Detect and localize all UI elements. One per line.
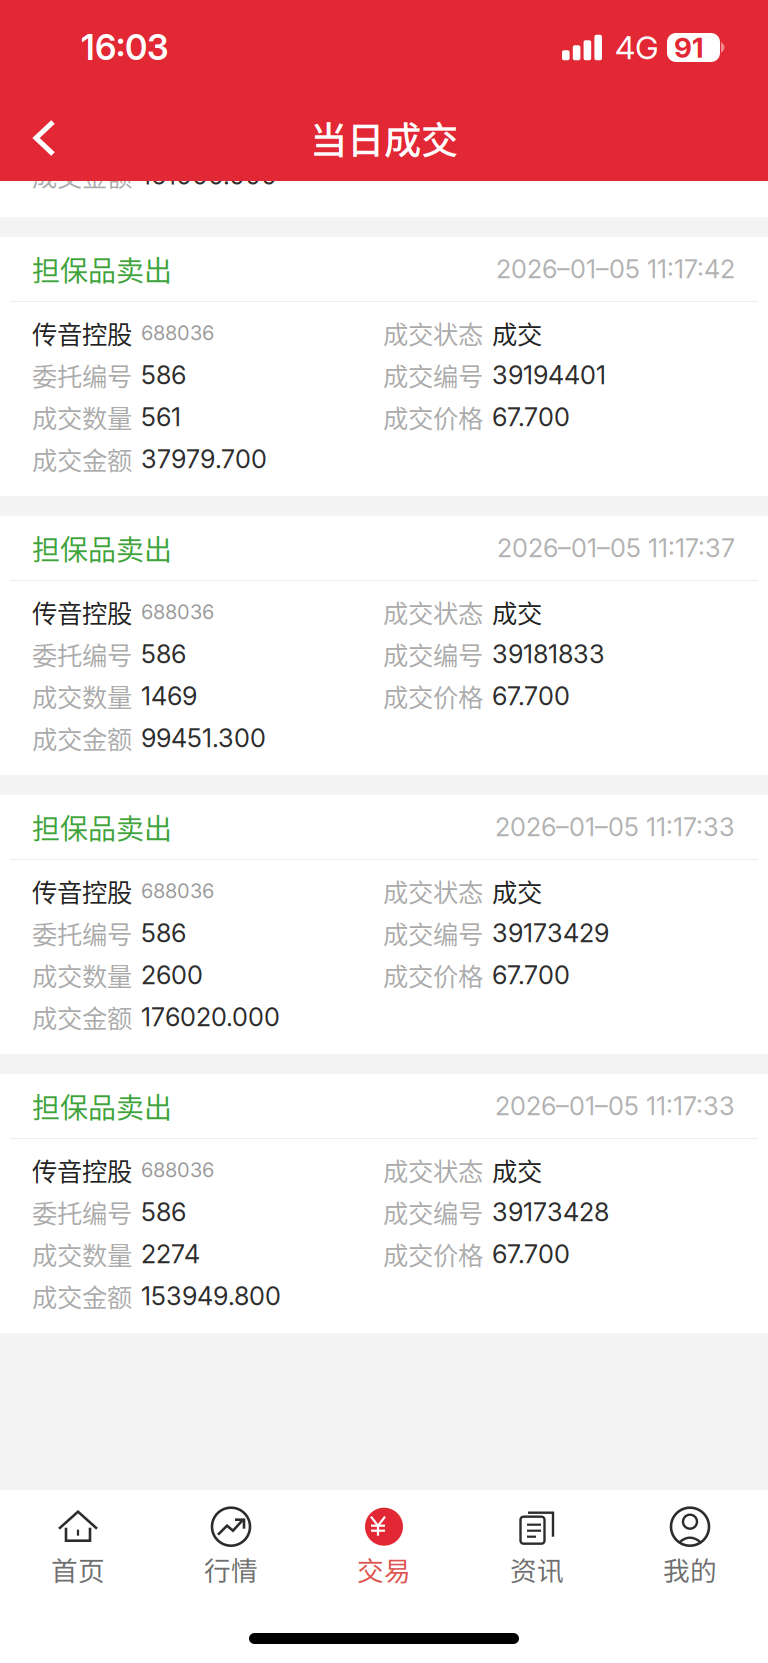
staticText: 161000.000 <box>141 160 277 191</box>
staticText: 成交编号 <box>383 915 483 951</box>
staticText: 成交状态 <box>383 873 483 909</box>
staticText: 67.700 <box>492 1239 570 1269</box>
staticText: 成交金额 <box>32 441 132 477</box>
staticText: 1469 <box>141 681 197 711</box>
staticText: 37979.700 <box>141 444 267 474</box>
staticText: 688036 <box>141 1158 214 1182</box>
staticText: 586 <box>141 639 186 669</box>
staticText: 成交价格 <box>383 678 483 714</box>
button[interactable]: 担保品卖出 <box>0 237 768 496</box>
staticText: 传音控股 <box>32 873 132 909</box>
staticText: 586 <box>141 360 186 390</box>
staticText: 成交价格 <box>383 399 483 435</box>
staticText: 担保品卖出 <box>32 249 172 289</box>
staticText: 成交数量 <box>32 678 132 714</box>
staticText: 成交金额 <box>32 720 132 756</box>
staticText: 当日成交 <box>310 111 458 165</box>
button[interactable]: 交易 <box>307 1497 460 1597</box>
staticText: 2274 <box>141 1239 200 1269</box>
staticText: 67.700 <box>492 681 570 711</box>
staticText: 176020.000 <box>141 1002 280 1032</box>
staticText: 2026–01–05 11:17:37 <box>497 533 735 563</box>
staticText: 67.700 <box>492 960 570 990</box>
staticText: 成交数量 <box>32 957 132 993</box>
staticText: 586 <box>141 1197 186 1227</box>
staticText: 688036 <box>141 600 214 624</box>
staticText: 资讯 <box>510 1550 564 1588</box>
staticText: 成交 <box>492 1152 542 1188</box>
staticText: 688036 <box>141 879 214 903</box>
staticText: 成交金额 <box>32 999 132 1035</box>
staticText: 委托编号 <box>32 357 132 393</box>
staticText: 传音控股 <box>32 594 132 630</box>
staticText: 153949.800 <box>141 1281 281 1311</box>
staticText: 2026–01–05 11:17:33 <box>495 1091 735 1121</box>
staticText: 16:03 <box>81 26 169 68</box>
staticText: 成交价格 <box>383 957 483 993</box>
staticText: 561 <box>141 402 181 432</box>
staticText: 成交金额 <box>32 157 132 194</box>
staticText: 交易 <box>357 1550 411 1588</box>
staticText: 委托编号 <box>32 636 132 672</box>
staticText: 成交数量 <box>32 399 132 435</box>
button[interactable]: 担保品卖出 <box>0 1074 768 1333</box>
staticText: 成交状态 <box>383 594 483 630</box>
staticText: 成交数量 <box>32 1236 132 1272</box>
staticText: 传音控股 <box>32 1152 132 1188</box>
button[interactable]: 资讯 <box>460 1497 613 1597</box>
staticText: 行情 <box>204 1550 258 1588</box>
staticText: 4G <box>615 28 659 67</box>
staticText: 2026–01–05 11:17:42 <box>496 254 735 284</box>
button[interactable]: 担保品卖出 <box>0 795 768 1054</box>
staticText: 成交状态 <box>383 315 483 351</box>
staticText: 成交 <box>492 594 542 630</box>
staticText: 成交金额 <box>32 1278 132 1314</box>
staticText: 我的 <box>663 1550 717 1588</box>
staticText: 担保品卖出 <box>32 1086 172 1126</box>
staticText: 成交编号 <box>383 636 483 672</box>
button[interactable]: 返回 <box>0 95 83 181</box>
staticText: 成交状态 <box>383 1152 483 1188</box>
staticText: 传音控股 <box>32 315 132 351</box>
button[interactable]: 行情 <box>154 1497 307 1597</box>
staticText: 2026–01–05 11:17:33 <box>495 812 735 842</box>
button[interactable]: 首页 <box>1 1497 154 1597</box>
staticText: 担保品卖出 <box>32 528 172 568</box>
button[interactable]: 担保品卖出 <box>0 516 768 775</box>
staticText: 成交编号 <box>383 1194 483 1230</box>
staticText: 委托编号 <box>32 915 132 951</box>
staticText: 委托编号 <box>32 1194 132 1230</box>
button[interactable]: 我的 <box>613 1497 766 1597</box>
staticText: 成交价格 <box>383 1236 483 1272</box>
staticText: 担保品卖出 <box>32 807 172 847</box>
staticText: 91 <box>674 31 704 64</box>
staticText: 586 <box>141 918 186 948</box>
staticText: 2600 <box>141 960 203 990</box>
staticText: 成交编号 <box>383 357 483 393</box>
staticText: 39173428 <box>492 1197 609 1227</box>
staticText: 67.700 <box>492 402 570 432</box>
staticText: 成交 <box>492 315 542 351</box>
staticText: 39194401 <box>492 360 606 390</box>
staticText: 成交 <box>492 873 542 909</box>
staticText: 688036 <box>141 321 214 345</box>
staticText: 首页 <box>51 1550 105 1588</box>
staticText: 39173429 <box>492 918 609 948</box>
staticText: 39181833 <box>492 639 605 669</box>
staticText: 99451.300 <box>141 723 266 753</box>
